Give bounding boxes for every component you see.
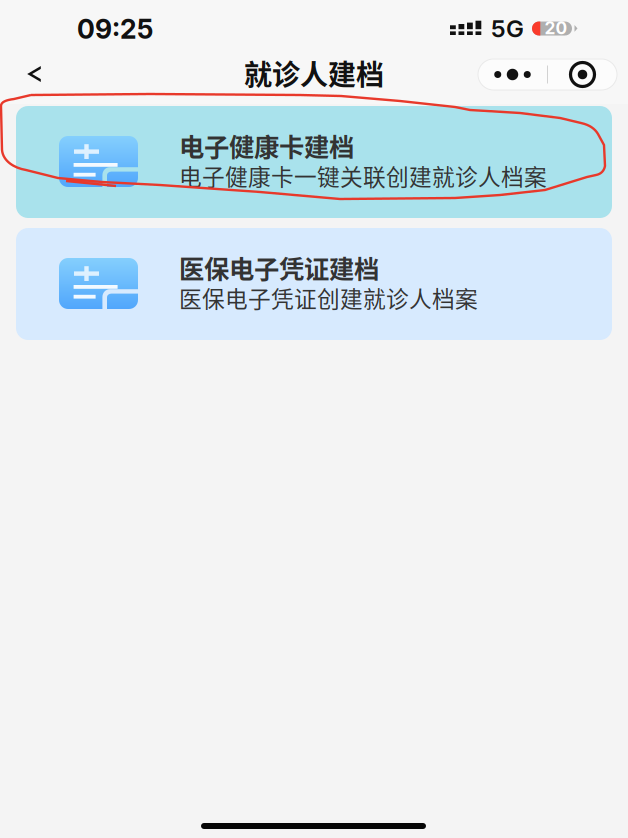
button[interactable]: 电子健康卡建档	[16, 106, 612, 218]
button[interactable]: 返回	[11, 52, 57, 96]
button[interactable]: 医保电子凭证建档	[16, 228, 612, 340]
staticText: 就诊人建档	[244, 53, 384, 93]
staticText: 20	[544, 17, 567, 38]
staticText: 医保电子凭证创建就诊人档案	[179, 281, 478, 314]
button[interactable]: 更多	[478, 59, 617, 90]
staticText: 09:25	[77, 13, 153, 45]
staticText: 电子健康卡建档	[179, 127, 354, 164]
staticText: 医保电子凭证建档	[179, 249, 379, 286]
staticText: 电子健康卡一键关联创建就诊人档案	[179, 159, 547, 192]
staticText: 5G	[491, 14, 524, 43]
